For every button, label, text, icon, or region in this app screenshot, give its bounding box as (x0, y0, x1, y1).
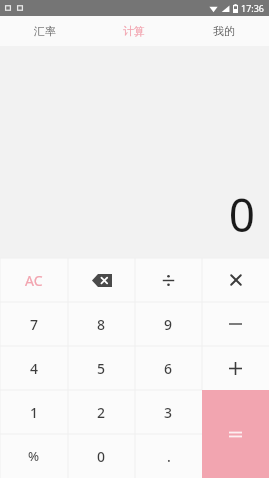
button[interactable] (135, 258, 202, 302)
staticText: 5 (97, 359, 106, 378)
button[interactable]: 5 (68, 346, 135, 390)
staticText: 4 (30, 359, 39, 378)
staticText: 我的 (213, 24, 235, 38)
button[interactable]: 9 (135, 302, 202, 346)
staticText: 8 (97, 315, 106, 334)
button[interactable]: 0 (68, 434, 135, 478)
button[interactable]: % (0, 434, 68, 478)
staticText: 7 (30, 315, 39, 334)
button[interactable] (202, 258, 269, 302)
button[interactable]: 8 (68, 302, 135, 346)
button[interactable]: . (135, 434, 202, 478)
button[interactable]: Equals (202, 390, 269, 478)
button[interactable]: 3 (135, 390, 202, 434)
staticText: . (167, 447, 171, 466)
staticText: 0 (97, 447, 106, 466)
staticText: 9 (164, 315, 173, 334)
button[interactable]: Backspace (68, 258, 135, 302)
staticText: 17:36 (241, 2, 265, 14)
button[interactable]: 1 (0, 390, 68, 434)
button[interactable] (202, 346, 269, 390)
button[interactable]: 计算 (89, 16, 179, 46)
button[interactable] (202, 302, 269, 346)
staticText: 0 (228, 183, 255, 246)
staticText: 1 (30, 403, 39, 422)
button[interactable]: 4 (0, 346, 68, 390)
button[interactable]: 我的 (179, 16, 269, 46)
button[interactable]: 汇率 (0, 16, 89, 46)
button[interactable]: 6 (135, 346, 202, 390)
staticText: 2 (97, 403, 106, 422)
staticText: 计算 (123, 24, 145, 38)
staticText: 3 (164, 403, 173, 422)
staticText: 6 (164, 359, 173, 378)
staticText: % (28, 447, 40, 465)
staticText: AC (25, 271, 43, 290)
button[interactable]: 2 (68, 390, 135, 434)
button[interactable]: AC (0, 258, 68, 302)
staticText: 汇率 (34, 24, 56, 38)
button[interactable]: 7 (0, 302, 68, 346)
